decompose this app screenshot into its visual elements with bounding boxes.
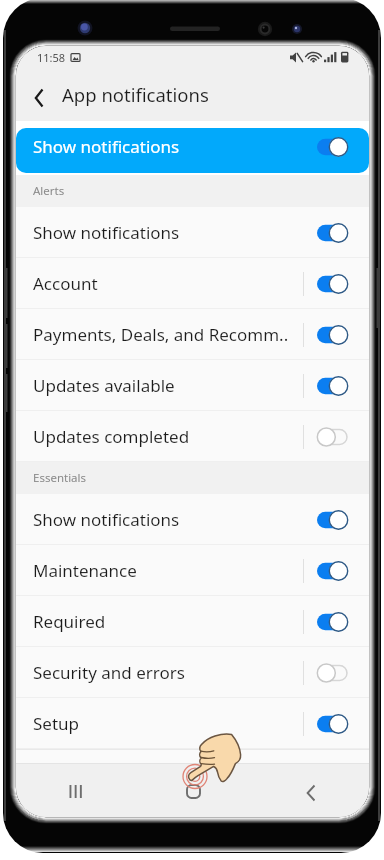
button[interactable]: Show notifications [16,207,369,258]
staticText: Account [33,272,98,295]
staticText: Payments, Deals, and Recomm.. [33,323,289,346]
staticText: App notifications [62,82,209,107]
button[interactable]: Setup [16,698,369,749]
button[interactable]: Show notifications [16,128,369,173]
staticText: Show notifications [33,135,180,158]
button[interactable]: Updates completed [16,411,369,462]
button[interactable]: Maintenance [16,545,369,596]
staticText: Security and errors [33,661,185,684]
button[interactable]: Home [171,769,215,813]
button[interactable]: Back [16,72,62,118]
staticText: 11:58 [37,50,66,65]
staticText: Setup [33,712,80,735]
staticText: Maintenance [33,559,137,582]
staticText: Updates available [33,374,175,397]
button[interactable]: Back [288,769,332,813]
button[interactable]: Payments, Deals, and Recomm.. [16,309,369,360]
button[interactable]: Updates available [16,360,369,411]
staticText: Alerts [33,183,65,199]
staticText: Required [33,610,106,633]
button[interactable]: Required [16,596,369,647]
staticText: Essentials [33,470,87,486]
button[interactable]: Recent apps [53,769,97,813]
button[interactable]: Security and errors [16,647,369,698]
staticText: Updates completed [33,425,190,448]
staticText: Show notifications [33,508,180,531]
button[interactable]: Account [16,258,369,309]
button[interactable]: Show notifications [16,494,369,545]
staticText: Show notifications [33,221,180,244]
